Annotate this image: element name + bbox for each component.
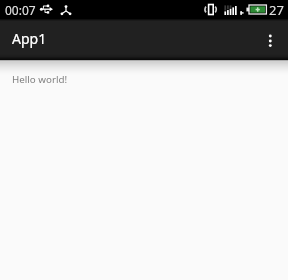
staticText: Hello world! [12, 73, 68, 86]
staticText: App1 [12, 29, 47, 48]
staticText: 27 [269, 1, 284, 19]
staticText: 00:07 [5, 2, 36, 18]
button[interactable]: More options [250, 19, 288, 60]
